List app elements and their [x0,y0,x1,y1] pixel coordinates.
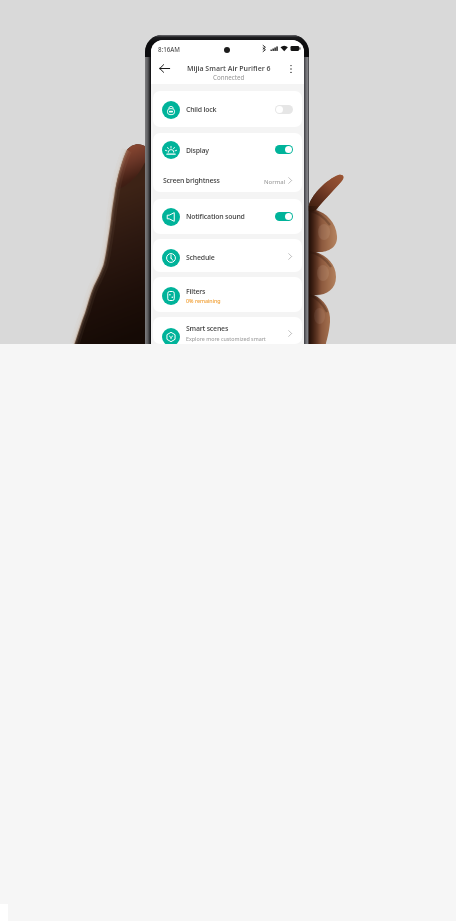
button[interactable]: Back [156,60,173,77]
button[interactable] [153,277,302,312]
staticText: Explore more customized smart [186,335,266,342]
staticText: Smart scenes [186,324,229,333]
button[interactable]: Turn on [275,105,293,114]
staticText: 0% remaining [186,297,221,304]
staticText: Filters [186,287,206,296]
button[interactable] [153,133,302,192]
staticText: Normal [264,178,286,186]
button[interactable]: Child lock [162,101,180,119]
button[interactable]: Schedule [162,249,180,267]
button[interactable]: Turn off [275,212,293,221]
button[interactable] [153,199,302,234]
staticText: Child lock [186,105,217,114]
button[interactable]: More options [283,61,299,77]
staticText: Schedule [186,253,215,262]
button[interactable]: Filters [162,287,180,305]
button[interactable]: Turn off [275,145,293,154]
button[interactable] [153,317,302,344]
staticText: Mijia Smart Air Purifier 6 [187,64,271,74]
staticText: Connected [213,73,245,81]
button[interactable]: Smart scenes [162,328,180,344]
staticText: Display [186,146,209,155]
button[interactable]: Display [162,141,180,159]
staticText: Screen brightness [163,176,220,185]
staticText: 8:16AM [158,45,181,53]
button[interactable]: Notification sound [162,208,180,226]
button[interactable] [153,239,302,272]
button[interactable] [153,91,302,127]
staticText: Notification sound [186,212,245,221]
